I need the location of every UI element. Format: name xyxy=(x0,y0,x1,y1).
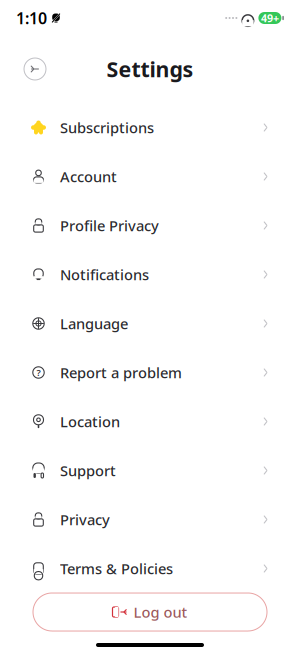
button[interactable]: Location xyxy=(0,397,300,446)
staticText: Profile Privacy xyxy=(60,216,159,235)
button[interactable]: Privacy xyxy=(0,495,300,544)
staticText: Location xyxy=(60,412,120,431)
button[interactable]: Account xyxy=(0,152,300,201)
button[interactable]: Notifications xyxy=(0,250,300,299)
staticText: Settings xyxy=(106,55,193,83)
staticText: Report a problem xyxy=(60,363,182,382)
staticText: 49+ xyxy=(261,11,279,25)
staticText: Subscriptions xyxy=(60,118,154,137)
staticText: 1:10 xyxy=(16,7,47,29)
button[interactable]: Support xyxy=(0,446,300,495)
staticText: ? xyxy=(36,366,40,379)
staticText: Account xyxy=(60,167,117,186)
button[interactable]: Back xyxy=(20,54,50,84)
staticText: Notifications xyxy=(60,265,149,284)
button[interactable]: Log out xyxy=(33,593,267,631)
button[interactable]: Terms & Policies xyxy=(0,544,300,593)
staticText: Log out xyxy=(133,602,187,622)
button[interactable]: Language xyxy=(0,299,300,348)
button[interactable]: Subscriptions xyxy=(0,103,300,152)
staticText: Privacy xyxy=(60,510,110,529)
staticText: Terms & Policies xyxy=(60,559,173,578)
staticText: Language xyxy=(60,314,128,333)
button[interactable]: Profile Privacy xyxy=(0,201,300,250)
button[interactable]: ? xyxy=(0,348,300,397)
staticText: Support xyxy=(60,461,116,480)
